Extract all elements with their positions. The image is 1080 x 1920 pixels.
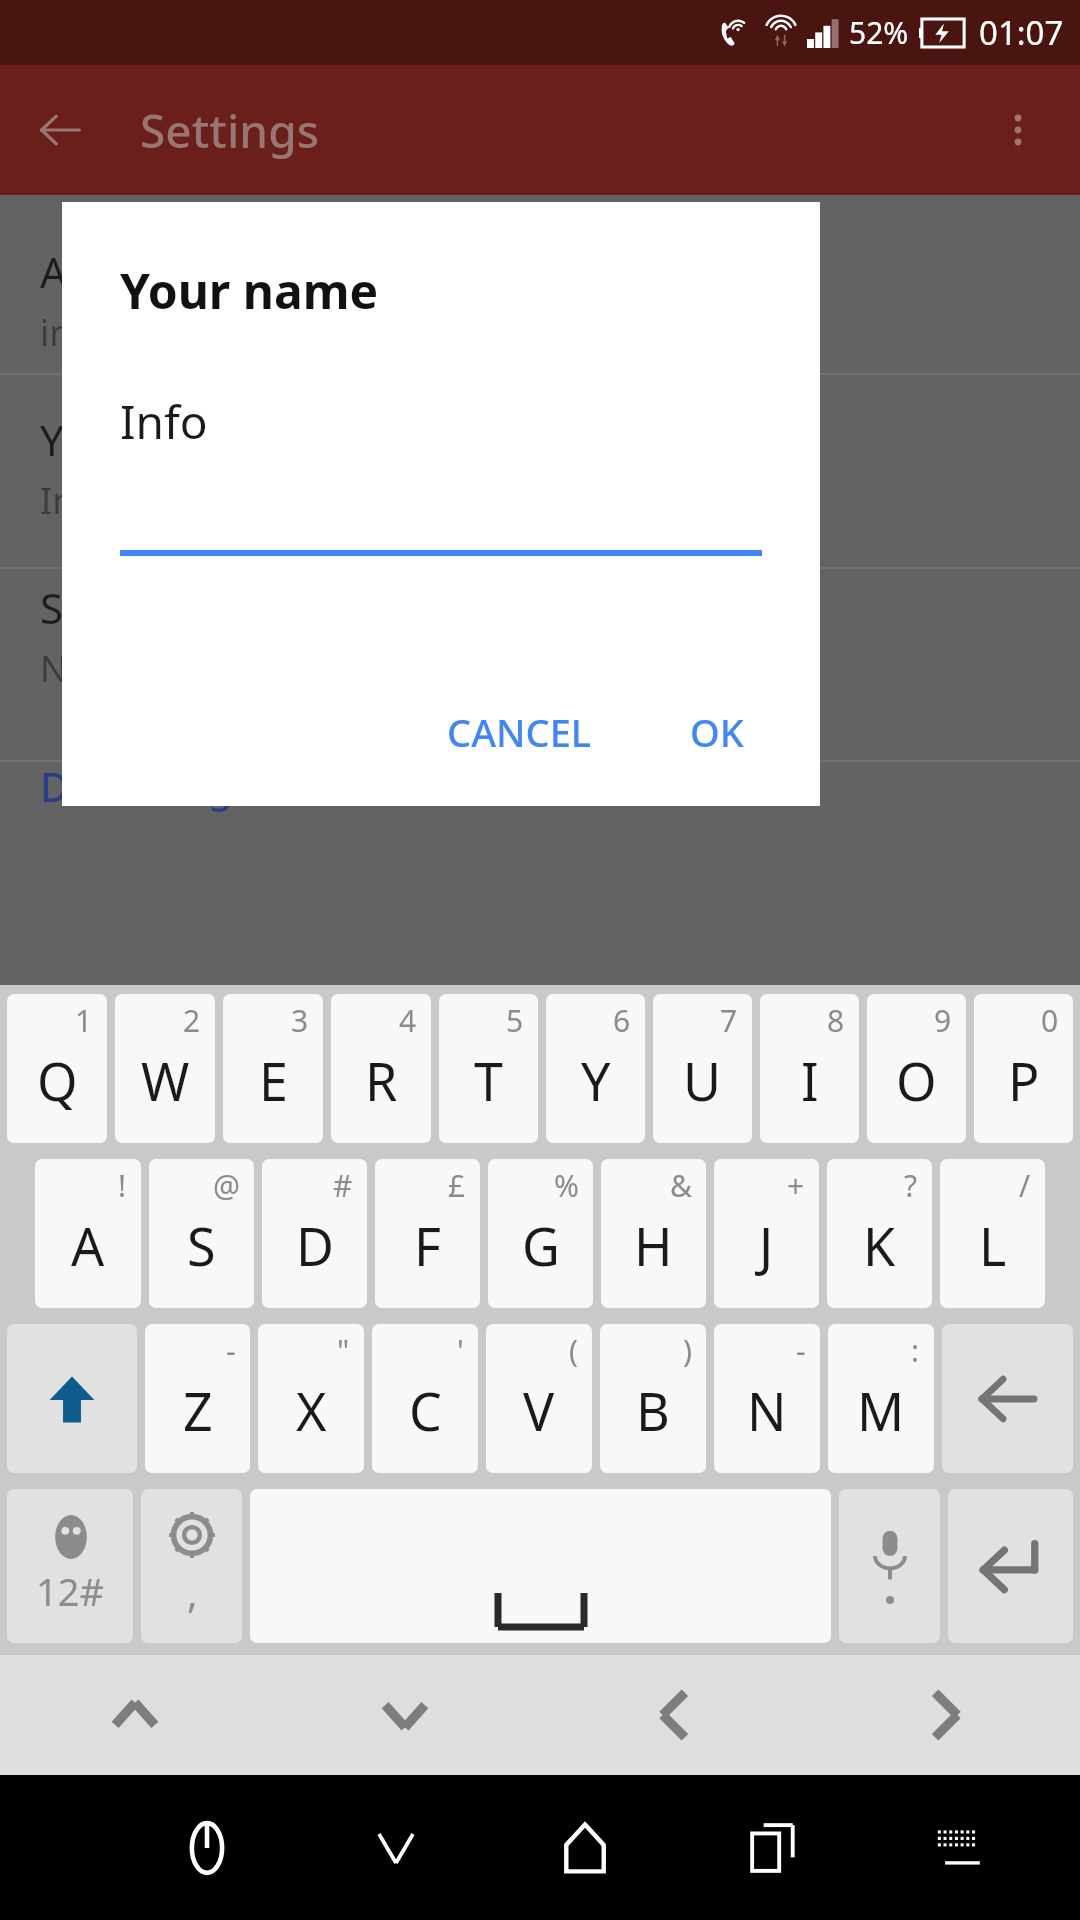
staticText: Your name [120,258,379,323]
staticText: 01:07 [979,10,1064,55]
staticText: I [801,1045,819,1116]
button[interactable]: CANCEL [429,692,610,772]
staticText: ) [683,1330,692,1371]
button[interactable]: - [714,1324,820,1473]
button[interactable]: Enter [948,1489,1073,1643]
button[interactable]: : [828,1324,934,1473]
staticText: , [187,1565,198,1619]
staticText: 52% [849,12,909,53]
button[interactable]: Move down [270,1655,540,1775]
button[interactable]: # [262,1159,367,1308]
button[interactable]: Keyboard [868,1775,1057,1920]
staticText: CANCEL [447,706,592,758]
staticText: Your name [40,411,254,468]
staticText: H [634,1210,673,1281]
staticText: 5 [506,1000,524,1041]
staticText: ( [569,1330,578,1371]
staticText: Data usage [40,759,256,813]
button[interactable]: 5 [439,994,538,1143]
staticText: J [759,1210,774,1281]
button[interactable]: Space [250,1489,831,1643]
staticText: O [896,1045,937,1116]
staticText: X [296,1375,327,1446]
button[interactable]: More options [982,94,1054,166]
button[interactable]: OK [672,692,762,772]
staticText: P [1008,1045,1040,1116]
staticText: & [670,1165,692,1206]
staticText: Info [120,390,208,453]
staticText: T [474,1045,503,1116]
button[interactable]: ! [35,1159,141,1308]
button[interactable]: Back [301,1775,490,1920]
staticText: B [636,1375,670,1446]
staticText: 3 [291,1000,309,1041]
button[interactable]: Symbols [7,1489,133,1643]
staticText: 12# [36,1565,105,1617]
button[interactable]: Back [24,94,96,166]
button[interactable]: ' [372,1324,478,1473]
staticText: info [40,308,106,357]
staticText: F [414,1210,441,1281]
button[interactable]: Power [112,1775,301,1920]
staticText: £ [448,1165,466,1206]
button[interactable]: / [940,1159,1045,1308]
button[interactable]: " [258,1324,364,1473]
staticText: N [747,1375,787,1446]
staticText: Q [37,1045,78,1116]
button[interactable]: Shift [7,1324,137,1473]
staticText: % [554,1165,579,1206]
staticText: / [1019,1165,1031,1206]
button[interactable]: Move right [810,1655,1080,1775]
button[interactable]: 8 [760,994,859,1143]
button[interactable]: Move left [540,1655,810,1775]
button[interactable]: Backspace [942,1324,1073,1473]
button[interactable]: 1 [7,994,107,1143]
button[interactable]: Home [490,1775,679,1920]
staticText: 6 [613,1000,631,1041]
staticText: Info [40,476,109,525]
button[interactable]: @ [149,1159,254,1308]
staticText: C [409,1375,442,1446]
staticText: V [523,1375,555,1446]
staticText: 0 [1041,1000,1059,1041]
staticText: 1 [75,1000,93,1041]
button[interactable]: Recents [679,1775,868,1920]
button[interactable]: + [714,1159,819,1308]
button[interactable]: 9 [867,994,966,1143]
button[interactable]: Voice input [839,1489,940,1643]
staticText: Server [40,579,167,636]
staticText: 9 [934,1000,952,1041]
staticText: ' [457,1330,464,1371]
button[interactable]: 3 [223,994,323,1143]
button[interactable]: 7 [653,994,752,1143]
button[interactable]: 0 [974,994,1073,1143]
button[interactable]: ) [600,1324,706,1473]
button[interactable]: & [601,1159,706,1308]
staticText: S [187,1210,216,1281]
staticText: Y [581,1045,611,1116]
button[interactable]: £ [375,1159,480,1308]
staticText: ? [904,1165,918,1206]
staticText: M [857,1375,905,1446]
button[interactable]: - [145,1324,250,1473]
staticText: : [911,1330,920,1371]
staticText: G [522,1210,560,1281]
button[interactable]: ( [486,1324,592,1473]
staticText: D [296,1210,334,1281]
staticText: Z [183,1375,213,1446]
staticText: " [337,1330,350,1371]
staticText: W [141,1045,190,1116]
staticText: @ [213,1165,240,1206]
staticText: 4 [399,1000,417,1041]
staticText: R [365,1045,398,1116]
button[interactable]: 2 [115,994,215,1143]
staticText: 7 [720,1000,738,1041]
staticText: 2 [183,1000,201,1041]
staticText: ! [118,1165,127,1206]
button[interactable]: % [488,1159,593,1308]
button[interactable]: Settings [141,1489,242,1643]
button[interactable]: 4 [331,994,431,1143]
button[interactable]: 6 [546,994,645,1143]
button[interactable]: Move up [0,1655,270,1775]
button[interactable]: ? [827,1159,932,1308]
